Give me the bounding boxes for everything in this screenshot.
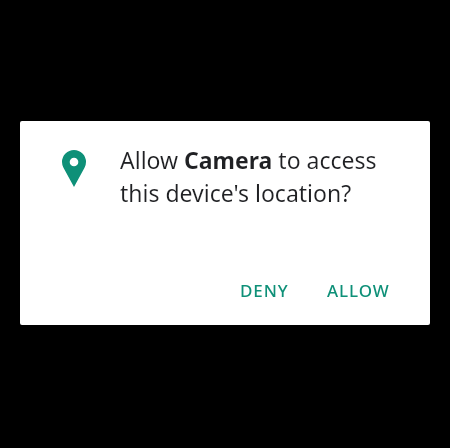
button[interactable]: DENY bbox=[232, 272, 297, 309]
other: Location bbox=[62, 150, 86, 187]
staticText: ALLOW bbox=[327, 279, 390, 302]
staticText: Allow Camera to access this device's loc… bbox=[120, 144, 392, 209]
staticText: DENY bbox=[240, 279, 289, 302]
button[interactable]: ALLOW bbox=[319, 272, 398, 309]
